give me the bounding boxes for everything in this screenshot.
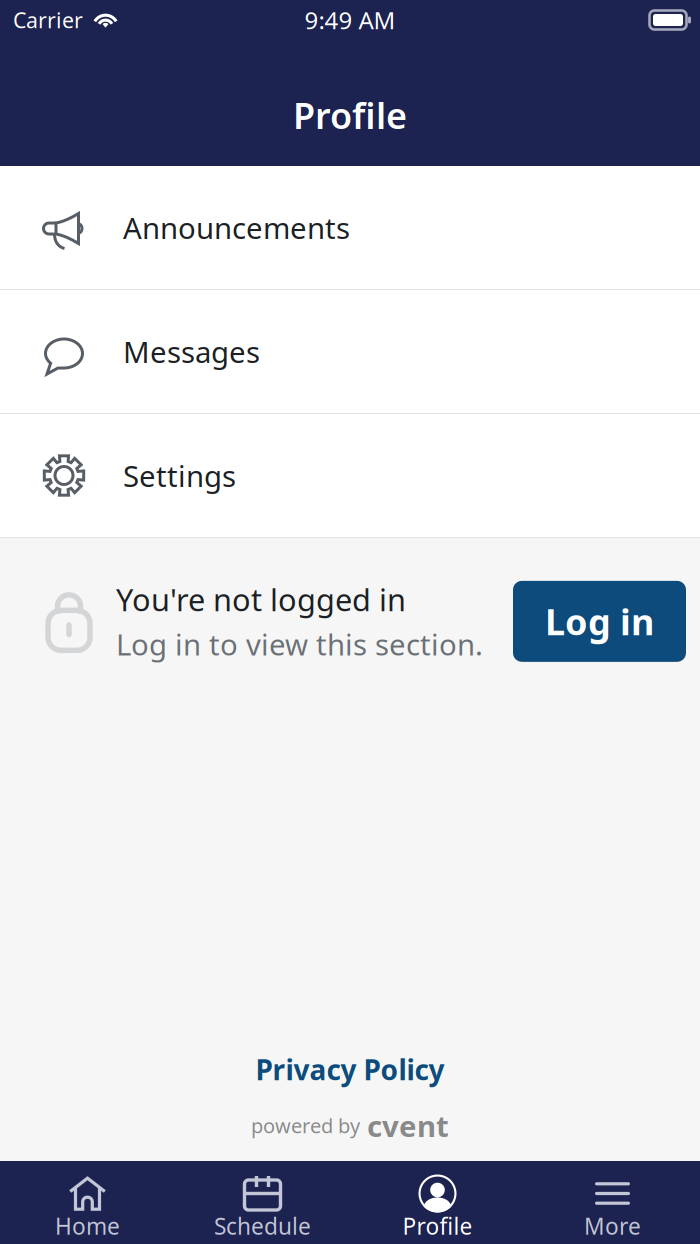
staticText: Carrier xyxy=(13,6,83,34)
button[interactable]: Schedule xyxy=(175,1161,350,1244)
staticText: Settings xyxy=(123,456,236,495)
button[interactable]: More xyxy=(525,1161,700,1244)
staticText: You're not logged in xyxy=(116,579,406,620)
staticText: Announcements xyxy=(123,208,350,247)
staticText: Log in to view this section. xyxy=(116,625,483,664)
staticText: 9:49 AM xyxy=(304,4,395,36)
button[interactable]: Profile xyxy=(350,1161,525,1244)
button[interactable]: Log in xyxy=(513,581,686,662)
staticText: Messages xyxy=(123,332,260,371)
button[interactable]: Announcements xyxy=(0,166,700,289)
staticText: Schedule xyxy=(214,1211,311,1241)
button[interactable]: Messages xyxy=(0,290,700,413)
button[interactable]: Privacy Policy xyxy=(255,1051,444,1088)
staticText: Home xyxy=(55,1211,120,1241)
button[interactable]: Home xyxy=(0,1161,175,1244)
staticText: Profile xyxy=(402,1211,472,1241)
staticText: Privacy Policy xyxy=(255,1051,444,1088)
staticText: More xyxy=(584,1211,641,1241)
staticText: Profile xyxy=(293,91,407,139)
button[interactable]: Settings xyxy=(0,414,700,537)
staticText: Log in xyxy=(545,597,654,645)
staticText: cvent xyxy=(367,1106,449,1145)
staticText: powered by xyxy=(251,1112,360,1139)
